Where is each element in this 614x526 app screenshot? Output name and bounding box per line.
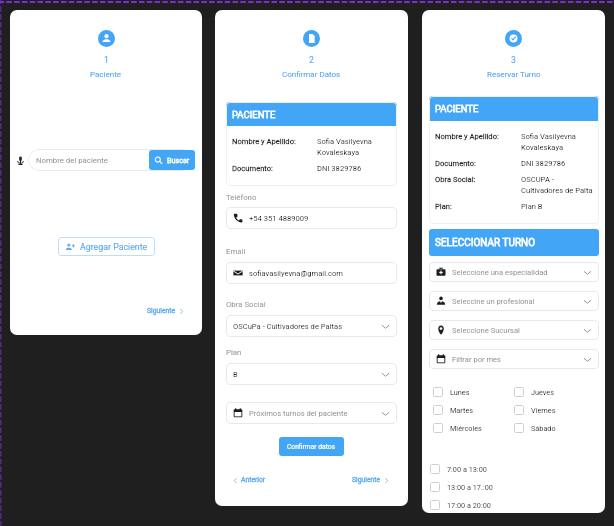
staticText: OSCUPA - Cultivadores de Palta [521,175,593,195]
button[interactable]: Miércoles [433,421,482,435]
staticText: Sábado [531,424,556,433]
staticText: Nombre y Apellido: [232,137,317,146]
button[interactable]: Filtrar por mes [429,349,599,369]
staticText: Próximos turnos del paciente [249,409,348,418]
staticText: SELECCIONAR TURNO [435,237,536,249]
button[interactable]: Seleccine un profesional [429,291,599,311]
button[interactable]: Seleccione una especialidad [429,262,599,282]
button[interactable]: Seleccione Sucursal [429,320,599,340]
staticText: Reservar Turno [487,70,541,79]
staticText: Plan [226,348,242,357]
staticText: Confirmar Datos [282,70,341,79]
staticText: Jueves [531,388,554,397]
staticText: Email [226,247,246,256]
staticText: Anterior [241,476,266,484]
button[interactable]: Lunes [433,385,470,399]
button[interactable]: sofiavasilyevna@gmail.com [226,262,397,284]
staticText: Seleccione Sucursal [452,326,520,335]
button[interactable]: Agregar Paciente [58,237,155,256]
staticText: Plan B [521,202,543,211]
button[interactable]: Jueves [514,385,554,399]
staticText: Sofia Vasilyevna Kovaleskaya [521,132,576,152]
staticText: DNI 3829786 [317,164,362,173]
staticText: 2 [309,55,314,65]
staticText: Confirmar datos [287,443,336,451]
staticText: Agregar Paciente [80,242,148,252]
button[interactable]: Paciente [98,30,115,47]
staticText: Filtrar por mes [452,355,502,364]
staticText: sofiavasilyevna@gmail.com [249,269,343,278]
button[interactable]: Buscar [149,150,195,170]
staticText: B [233,370,238,379]
button[interactable]: 13:00 a 17.:00 [430,480,493,494]
button[interactable]: Dictar por voz [13,150,27,170]
staticText: Siguiente [352,476,381,484]
staticText: PACIENTE [435,103,479,114]
staticText: Documento: [435,159,521,168]
button[interactable]: OSCuPa - Cultivadores de Paltas [226,315,397,337]
staticText: 7:00 a 13:00 [447,465,487,474]
staticText: 3 [511,55,516,65]
button[interactable]: Confirmar datos [279,437,344,456]
staticText: +54 351 4889009 [249,214,309,223]
staticText: 1 [104,55,109,65]
staticText: 13:00 a 17.:00 [447,483,493,492]
button[interactable]: +54 351 4889009 [226,207,397,229]
staticText: Plan: [435,202,521,211]
button[interactable]: B [226,363,397,385]
staticText: Martes [450,406,474,415]
button[interactable]: Martes [433,403,474,417]
staticText: PACIENTE [232,109,276,120]
staticText: Teléfono [226,193,257,202]
staticText: Paciente [90,70,122,79]
staticText: Sofia Vasilyevna Kovaleskaya [317,137,372,157]
staticText: Obra Social: [435,175,521,184]
staticText: OSCuPa - Cultivadores de Paltas [233,322,343,331]
button[interactable]: SELECCIONAR TURNO [429,229,599,256]
staticText: Buscar [167,156,190,164]
button[interactable]: 7:00 a 13:00 [430,462,487,476]
staticText: Nombre y Apellido: [435,132,521,141]
button[interactable]: Nombre del paciente [28,149,194,171]
button[interactable]: Confirmar Datos [303,30,320,47]
button[interactable]: Próximos turnos del paciente [226,402,397,424]
staticText: Obra Social [226,300,266,309]
staticText: Seleccine un profesional [452,297,535,306]
button[interactable]: Viernes [514,403,556,417]
staticText: Siguiente [147,307,176,315]
button[interactable]: Anterior [232,473,266,487]
staticText: DNI 3829786 [521,159,566,168]
staticText: Nombre del paciente [36,156,108,165]
button[interactable]: Reservar Turno [505,30,522,47]
staticText: 17:00 a 20:00 [447,501,491,510]
button[interactable]: Sábado [514,421,556,435]
staticText: Miércoles [450,424,482,433]
staticText: Seleccione una especialidad [452,268,548,277]
button[interactable]: 17:00 a 20:00 [430,498,491,512]
button[interactable]: Siguiente [147,304,185,318]
staticText: Viernes [531,406,556,415]
button[interactable]: Siguiente [352,473,390,487]
staticText: Documento: [232,164,317,173]
staticText: Lunes [450,388,470,397]
